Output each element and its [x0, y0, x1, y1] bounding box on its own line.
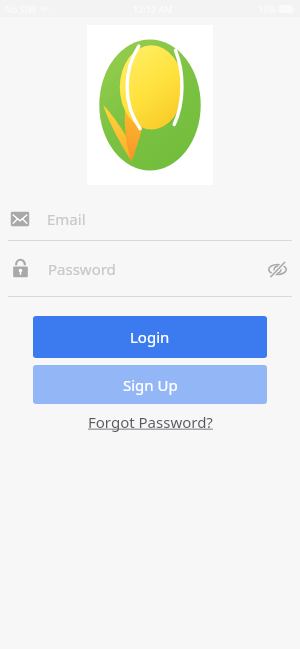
staticText: Password — [48, 259, 262, 279]
button[interactable]: Login — [33, 316, 267, 358]
button[interactable]: Email — [0, 197, 300, 240]
button[interactable]: Show password — [262, 254, 292, 284]
button[interactable]: Password — [0, 241, 300, 296]
button[interactable]: Forgot Password? — [80, 409, 221, 435]
staticText: Email — [47, 209, 86, 229]
staticText: Forgot Password? — [88, 412, 213, 432]
staticText: Sign Up — [123, 375, 178, 395]
button[interactable]: Sign Up — [33, 365, 267, 404]
staticText: Login — [130, 327, 170, 347]
